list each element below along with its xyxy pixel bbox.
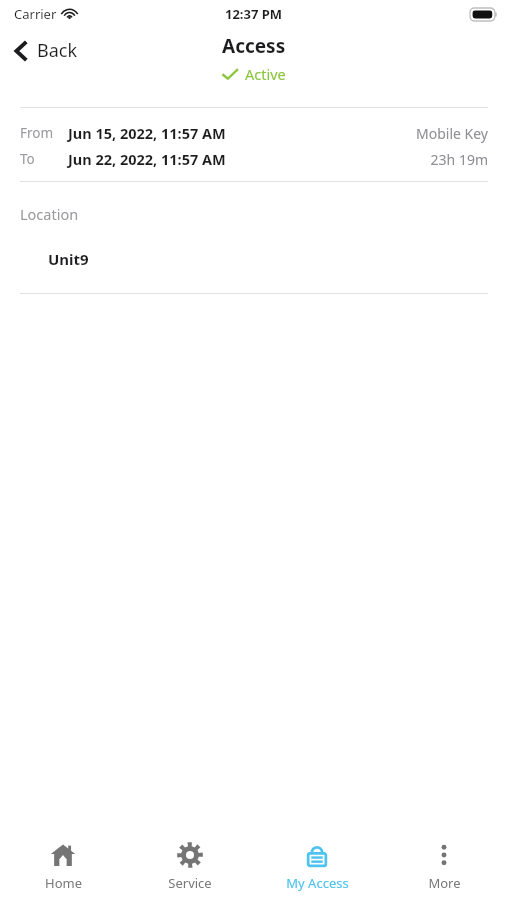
button[interactable]: More bbox=[389, 822, 499, 900]
staticText: Mobile Key bbox=[416, 124, 488, 143]
staticText: From bbox=[20, 124, 68, 142]
button[interactable]: Home bbox=[8, 822, 118, 900]
staticText: Jun 15, 2022, 11:57 AM bbox=[68, 123, 226, 143]
staticText: Service bbox=[168, 874, 212, 892]
staticText: Location bbox=[20, 204, 79, 224]
button[interactable]: From bbox=[0, 108, 507, 181]
staticText: More bbox=[428, 874, 461, 892]
other: More bbox=[431, 842, 457, 868]
staticText: 23h 19m bbox=[430, 150, 488, 169]
staticText: Unit9 bbox=[48, 249, 89, 269]
button[interactable]: Service bbox=[135, 822, 245, 900]
other: Home bbox=[50, 842, 76, 868]
staticText: 12:37 PM bbox=[225, 5, 283, 23]
staticText: Back bbox=[37, 38, 78, 63]
button[interactable]: Unit9 bbox=[0, 224, 507, 293]
staticText: Carrier bbox=[14, 5, 57, 23]
other: My Access bbox=[304, 842, 330, 868]
other: Service bbox=[177, 842, 203, 868]
button[interactable]: Back bbox=[0, 34, 90, 71]
button[interactable]: My Access bbox=[262, 822, 372, 900]
staticText: Jun 22, 2022, 11:57 AM bbox=[68, 149, 226, 169]
staticText: Active bbox=[245, 64, 286, 84]
staticText: My Access bbox=[286, 874, 349, 892]
staticText: To bbox=[20, 150, 68, 168]
staticText: Access bbox=[222, 33, 286, 59]
staticText: Home bbox=[45, 874, 82, 892]
